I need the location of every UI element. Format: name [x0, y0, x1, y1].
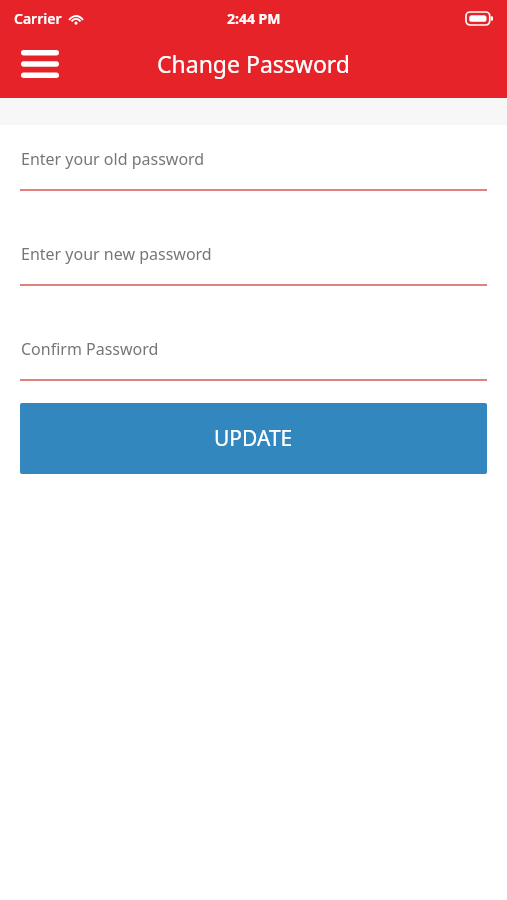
staticText: 2:44 PM [227, 9, 281, 28]
staticText: Enter your old password [21, 148, 205, 170]
staticText: Confirm Password [21, 338, 159, 360]
button[interactable]: Enter your new password [0, 238, 507, 286]
button[interactable]: Open navigation menu [12, 41, 68, 86]
button[interactable]: Enter your old password [0, 143, 507, 191]
button[interactable]: Confirm Password [0, 333, 507, 381]
staticText: Enter your new password [21, 243, 212, 265]
staticText: Change Password [157, 48, 350, 79]
staticText: UPDATE [214, 424, 293, 453]
button[interactable]: UPDATE [20, 403, 487, 474]
staticText: Carrier [14, 9, 62, 28]
